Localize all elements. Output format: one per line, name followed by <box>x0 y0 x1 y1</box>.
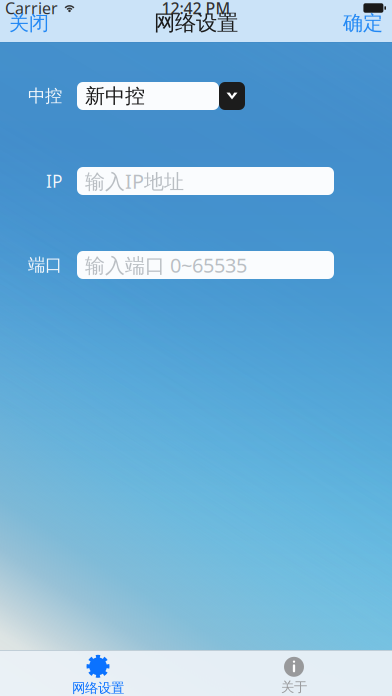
staticText: Carrier <box>5 0 58 19</box>
staticText: 新中控 <box>85 84 145 108</box>
staticText: 网络设置 <box>72 680 124 696</box>
staticText: 关于 <box>281 679 307 695</box>
button[interactable]: 选择中控 <box>219 82 245 110</box>
staticText: 12:42 PM <box>161 0 230 19</box>
staticText: 关闭 <box>9 11 49 35</box>
staticText: 端口 <box>28 254 62 276</box>
staticText: 网络设置 <box>154 10 238 36</box>
staticText: IP <box>46 169 62 192</box>
staticText: 输入端口 0~65535 <box>85 252 247 278</box>
button[interactable]: 网络设置 <box>0 651 196 696</box>
button[interactable]: 确定 <box>335 8 391 38</box>
staticText: 中控 <box>28 85 62 107</box>
staticText: 确定 <box>343 11 383 35</box>
button[interactable]: 关闭 <box>1 8 57 38</box>
staticText: 输入IP地址 <box>85 168 184 194</box>
button[interactable]: 关于 <box>196 652 392 695</box>
